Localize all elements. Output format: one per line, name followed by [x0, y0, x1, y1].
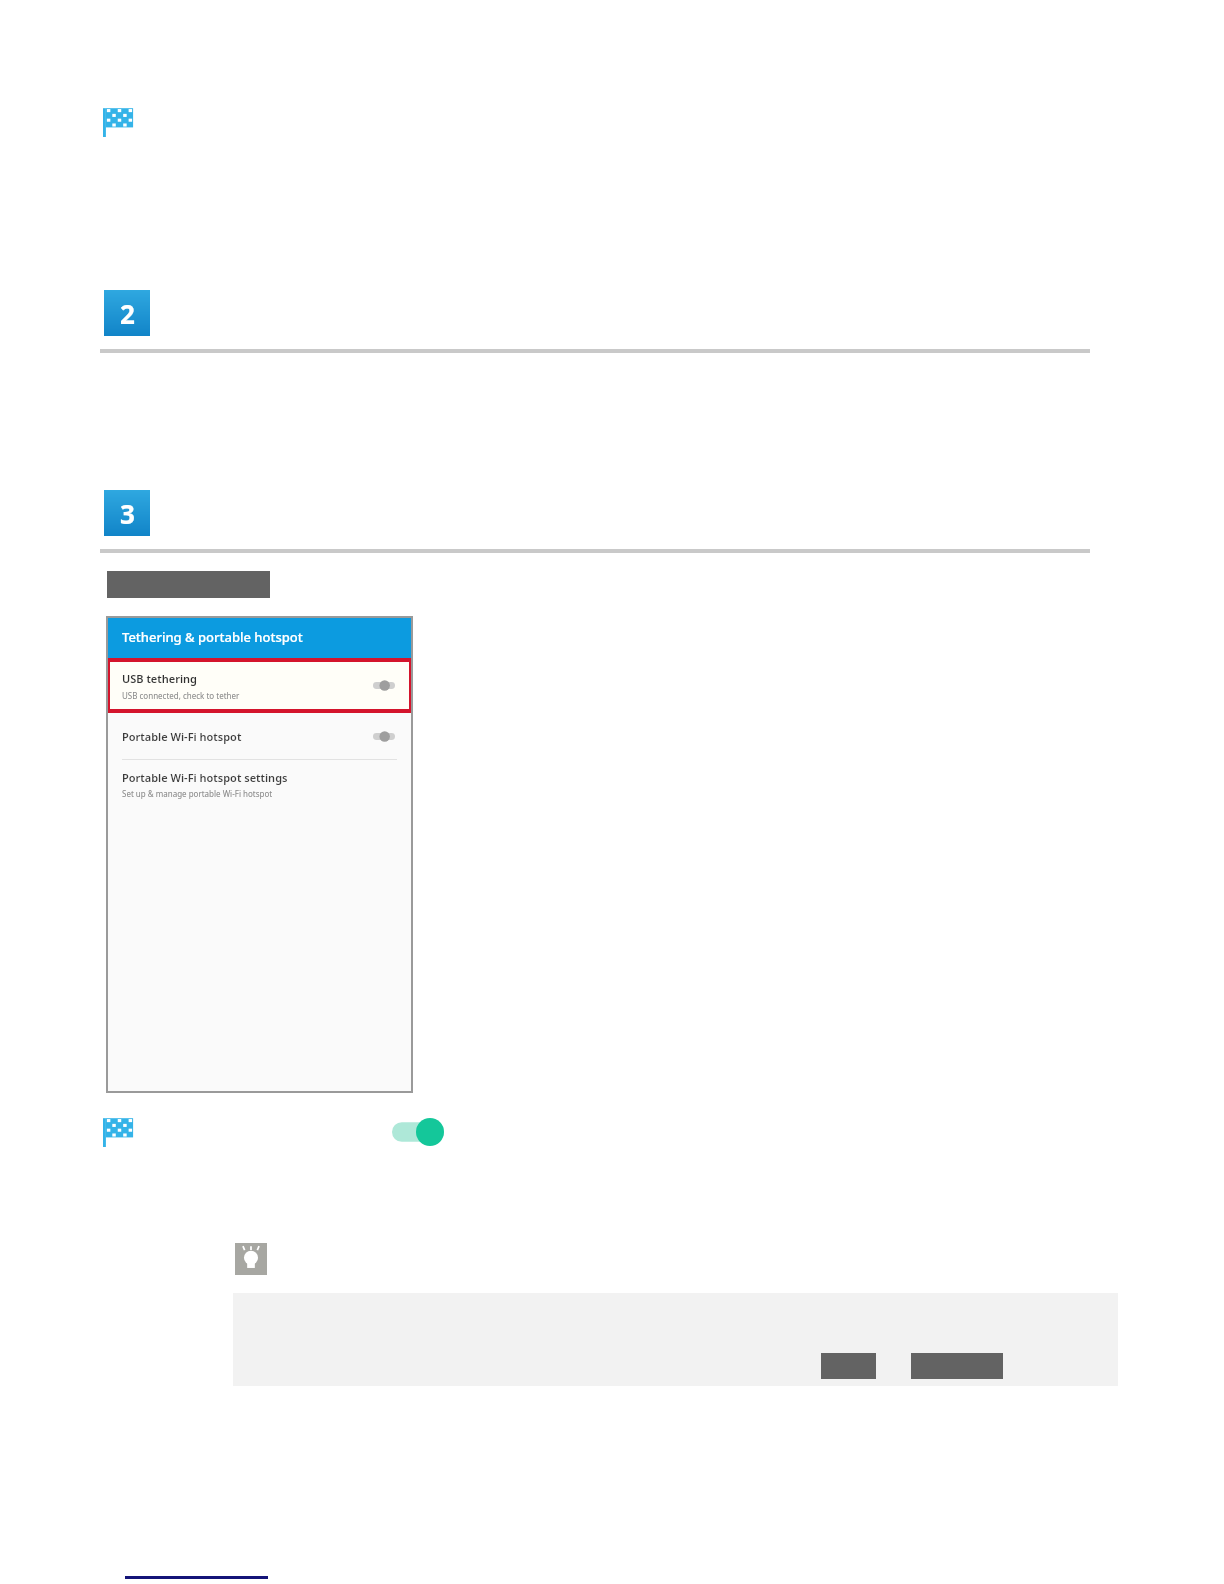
other: Completed	[103, 1115, 137, 1147]
staticText: Tethering & portable hotspot	[122, 628, 303, 646]
staticText: Portable Wi-Fi hotspot settings	[122, 770, 288, 785]
other: Completed	[103, 105, 137, 137]
staticText: USB tethering	[122, 671, 197, 686]
staticText: Portable Wi-Fi hotspot	[122, 729, 242, 744]
button[interactable]: Tethering on	[392, 1118, 444, 1146]
staticText: USB connected, check to tether	[122, 690, 240, 701]
button[interactable]: Tethering & portable hotspot	[106, 616, 413, 658]
staticText: Set up & manage portable Wi-Fi hotspot	[122, 788, 273, 799]
button[interactable]: Toggle	[373, 680, 395, 691]
staticText: 2	[120, 296, 135, 331]
staticText: 3	[120, 496, 135, 531]
button[interactable]: Portable Wi-Fi hotspot settings	[106, 760, 413, 808]
button[interactable]: Toggle	[373, 731, 395, 742]
button[interactable]: USB tethering	[106, 658, 413, 713]
button[interactable]: Portable Wi-Fi hotspot	[106, 713, 413, 759]
